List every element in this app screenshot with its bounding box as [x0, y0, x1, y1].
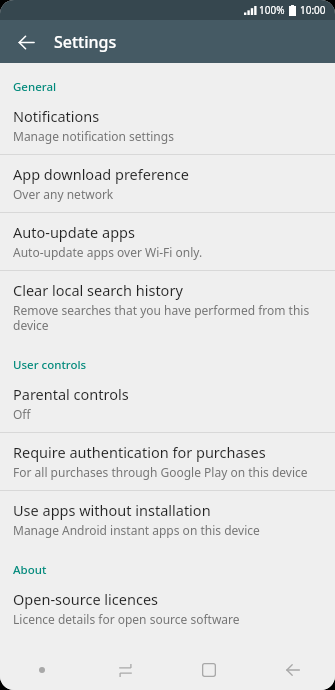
- staticText: Parental controls: [13, 384, 129, 404]
- staticText: Auto-update apps over Wi-Fi only.: [13, 244, 203, 260]
- staticText: Use apps without installation: [13, 500, 211, 520]
- staticText: Licence details for open source software: [13, 611, 240, 627]
- staticText: Notifications: [13, 106, 100, 126]
- staticText: Manage Android instant apps on this devi…: [13, 522, 260, 538]
- button[interactable]: Recent apps: [83, 650, 167, 690]
- button[interactable]: Clear local search history: [0, 271, 335, 343]
- button[interactable]: Back: [8, 24, 44, 60]
- staticText: Require authentication for purchases: [13, 442, 266, 462]
- button[interactable]: Notifications: [0, 97, 335, 154]
- staticText: For all purchases through Google Play on…: [13, 464, 308, 480]
- staticText: About: [13, 562, 47, 578]
- staticText: Auto-update apps: [13, 222, 135, 242]
- staticText: Manage notification settings: [13, 128, 174, 144]
- button[interactable]: App download preference: [0, 155, 335, 212]
- button[interactable]: Open-source licences: [0, 580, 335, 637]
- staticText: Settings: [54, 31, 117, 53]
- staticText: User controls: [13, 357, 87, 373]
- staticText: Clear local search history: [13, 280, 183, 300]
- button[interactable]: Use apps without installation: [0, 491, 335, 548]
- staticText: App download preference: [13, 164, 189, 184]
- button[interactable]: Auto-update apps: [0, 213, 335, 270]
- button[interactable]: Home: [167, 650, 251, 690]
- button[interactable]: Parental controls: [0, 375, 335, 432]
- staticText: Open-source licences: [13, 589, 158, 609]
- staticText: 10:00: [300, 3, 326, 17]
- staticText: Over any network: [13, 186, 114, 202]
- staticText: Off: [13, 406, 31, 422]
- staticText: Remove searches that you have performed …: [13, 302, 319, 333]
- staticText: 100%: [259, 3, 285, 17]
- button[interactable]: Require authentication for purchases: [0, 433, 335, 490]
- button[interactable]: Back: [251, 650, 335, 690]
- staticText: General: [13, 79, 57, 95]
- button[interactable]: Menu: [0, 650, 83, 690]
